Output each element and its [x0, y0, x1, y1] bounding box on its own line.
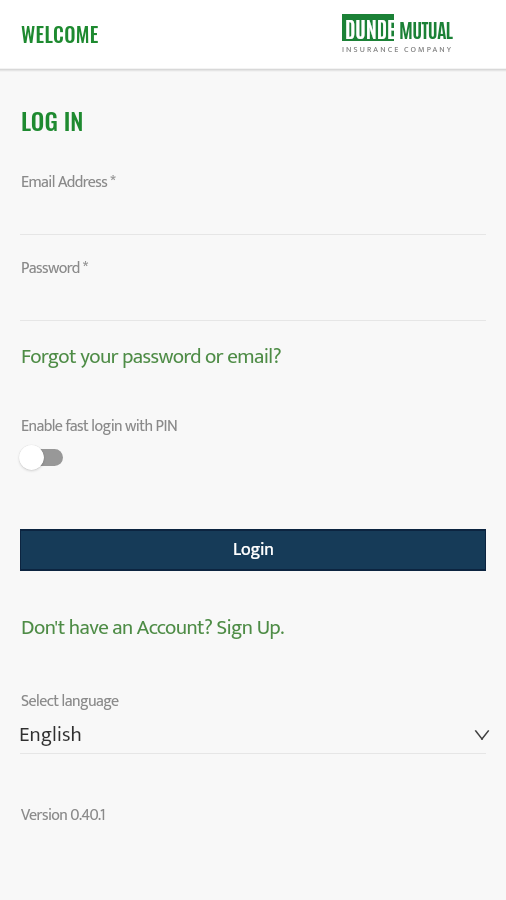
button[interactable]: Enable fast login with PIN — [19, 442, 71, 472]
staticText: English — [19, 717, 82, 749]
staticText: DUNDEE — [345, 15, 404, 42]
button[interactable]: Don't have an Account? Sign Up. — [0, 0, 264, 35]
other: Select language — [474, 727, 490, 743]
staticText: Email Address * — [21, 169, 116, 196]
staticText: INSURANCE COMPANY — [342, 43, 454, 56]
staticText: Select language — [21, 688, 119, 715]
staticText: Login — [233, 535, 274, 565]
button[interactable]: English — [20, 718, 486, 750]
staticText: WELCOME — [21, 19, 99, 49]
button[interactable]: Forgot your password or email? — [0, 0, 261, 35]
staticText: Password * — [21, 255, 88, 282]
button[interactable]: Login — [21, 531, 485, 569]
staticText: Version 0.40.1 — [21, 802, 106, 829]
staticText: LOG IN — [21, 102, 84, 138]
staticText: Enable fast login with PIN — [21, 413, 178, 440]
staticText: MUTUAL — [399, 16, 453, 42]
